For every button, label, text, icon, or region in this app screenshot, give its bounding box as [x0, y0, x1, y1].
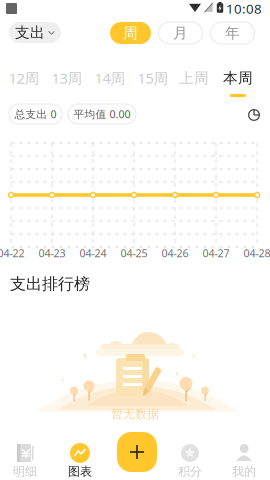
- button[interactable]: 月: [158, 22, 202, 44]
- staticText: 10:08: [226, 0, 262, 17]
- staticText: 我的: [232, 464, 256, 479]
- staticText: 13周: [51, 68, 82, 88]
- button[interactable]: 我的: [217, 428, 270, 480]
- staticText: 14周: [94, 68, 125, 88]
- staticText: 周: [123, 24, 138, 42]
- staticText: 04-26: [161, 246, 188, 260]
- button[interactable]: 积分: [163, 428, 217, 480]
- staticText: 12周: [8, 68, 39, 88]
- button[interactable]: 周: [110, 22, 151, 44]
- staticText: 暂无数据: [111, 407, 159, 421]
- staticText: 支出排行榜: [10, 274, 90, 294]
- staticText: 上周: [179, 69, 209, 87]
- staticText: 04-24: [79, 246, 106, 260]
- button[interactable]: 平均值 0.00: [68, 104, 136, 124]
- button[interactable]: 明细: [0, 428, 52, 480]
- button[interactable]: Add entry: [117, 432, 157, 472]
- staticText: 积分: [178, 464, 202, 479]
- staticText: 04-22: [0, 246, 24, 260]
- button[interactable]: Pie chart: [248, 109, 260, 121]
- button[interactable]: 上周: [173, 69, 215, 99]
- button[interactable]: 年: [210, 22, 254, 44]
- staticText: 本周: [223, 69, 253, 87]
- button[interactable]: 15周: [132, 69, 174, 99]
- staticText: 15周: [137, 68, 168, 88]
- staticText: 总支出 0: [14, 107, 56, 121]
- button[interactable]: 14周: [89, 69, 131, 99]
- staticText: 平均值 0.00: [73, 107, 130, 121]
- staticText: 04-27: [202, 246, 229, 260]
- staticText: 月: [173, 24, 188, 42]
- button[interactable]: 总支出 0: [9, 104, 62, 124]
- button[interactable]: 本周: [217, 69, 259, 99]
- staticText: 04-25: [120, 246, 147, 260]
- button[interactable]: 图表: [53, 428, 107, 480]
- button[interactable]: 12周: [3, 69, 45, 99]
- staticText: 明细: [13, 464, 37, 479]
- button[interactable]: 支出: [9, 22, 61, 43]
- staticText: 04-28: [243, 246, 270, 260]
- staticText: 年: [225, 24, 240, 42]
- staticText: 04-23: [38, 246, 65, 260]
- staticText: 图表: [68, 464, 92, 479]
- button[interactable]: 13周: [46, 69, 88, 99]
- staticText: 支出: [15, 23, 45, 41]
